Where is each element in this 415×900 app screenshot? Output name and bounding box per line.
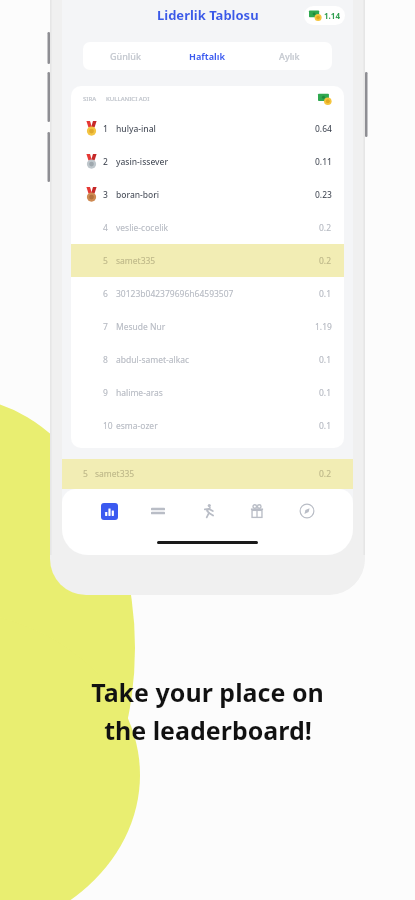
staticText: 6 — [103, 288, 108, 300]
staticText: 1.14 — [324, 10, 340, 21]
staticText: Mesude Nur — [116, 321, 315, 333]
staticText: KULLANICI ADI — [106, 95, 150, 103]
staticText: 9 — [103, 387, 108, 399]
staticText: SIRA — [83, 95, 97, 103]
staticText: 0.1 — [319, 288, 332, 300]
staticText: veslie-cocelik — [116, 222, 319, 234]
button[interactable]: Coins balance — [304, 6, 345, 25]
staticText: 0.2 — [319, 255, 332, 267]
staticText: 0.23 — [315, 189, 332, 201]
staticText: samet335 — [116, 255, 319, 267]
staticText: 0.2 — [319, 468, 332, 480]
staticText: 5 — [83, 468, 88, 480]
staticText: 0.2 — [319, 222, 332, 234]
staticText: 8 — [103, 354, 108, 366]
staticText: 0.1 — [319, 354, 332, 366]
staticText: yasin-issever — [116, 156, 315, 168]
button[interactable]: 7 — [71, 310, 344, 343]
button[interactable]: 5 — [62, 459, 353, 489]
staticText: 0.1 — [319, 387, 332, 399]
button[interactable]: Activity — [195, 498, 221, 524]
button[interactable]: Günlük — [85, 44, 166, 68]
staticText: 0.1 — [319, 420, 332, 432]
staticText: esma-ozer — [116, 420, 319, 432]
button[interactable]: Haftalık — [166, 44, 248, 68]
staticText: 1.19 — [315, 321, 332, 333]
button[interactable]: 10 — [71, 409, 344, 442]
button[interactable]: 6 — [71, 277, 344, 310]
staticText: 4 — [103, 222, 108, 234]
staticText: Haftalık — [189, 50, 226, 62]
button[interactable]: List — [145, 498, 171, 524]
staticText: 7 — [103, 321, 108, 333]
staticText: 5 — [103, 255, 108, 267]
staticText: 2 — [103, 156, 108, 168]
staticText: Liderlik Tablosu — [157, 6, 259, 24]
staticText: Aylık — [279, 50, 300, 62]
staticText: 3 — [103, 189, 108, 201]
staticText: hulya-inal — [116, 123, 315, 135]
button[interactable]: Leaderboard — [96, 498, 122, 524]
staticText: abdul-samet-alkac — [116, 354, 319, 366]
staticText: 30123b042379696h64593507 — [116, 288, 319, 300]
staticText: Günlük — [110, 50, 141, 62]
button[interactable]: 8 — [71, 343, 344, 376]
staticText: Take your place on — [91, 675, 324, 709]
button[interactable]: 2 — [71, 145, 344, 178]
staticText: halime-aras — [116, 387, 319, 399]
staticText: 1 — [103, 123, 108, 135]
staticText: 0.11 — [315, 156, 332, 168]
button[interactable]: 1 — [71, 112, 344, 145]
staticText: 0.64 — [315, 123, 332, 135]
staticText: the leaderboard! — [104, 713, 312, 747]
button[interactable]: 3 — [71, 178, 344, 211]
staticText: samet335 — [95, 468, 135, 480]
button[interactable]: Aylık — [248, 44, 330, 68]
staticText: boran-bori — [116, 189, 315, 201]
button[interactable]: 9 — [71, 376, 344, 409]
button[interactable]: Rewards — [244, 498, 270, 524]
button[interactable]: 4 — [71, 211, 344, 244]
staticText: 10 — [103, 420, 113, 432]
button[interactable]: Explore — [294, 498, 320, 524]
button[interactable]: 5 — [71, 244, 344, 277]
